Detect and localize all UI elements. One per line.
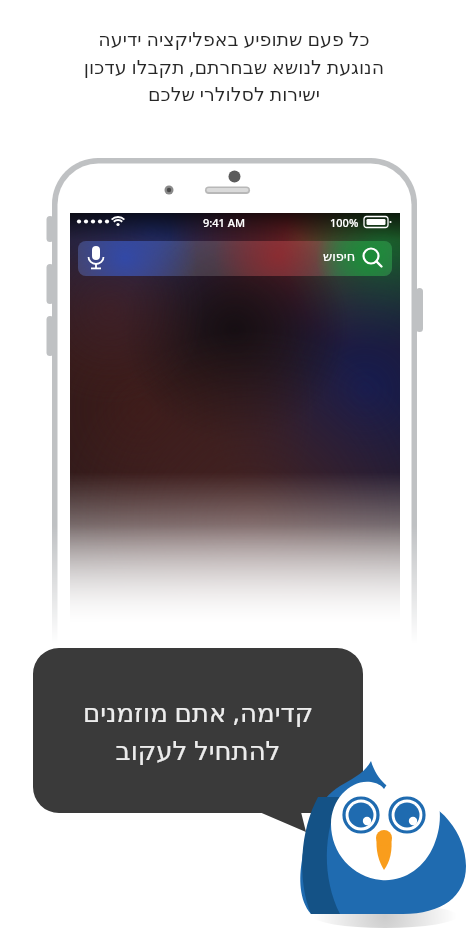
staticText: קדימה, אתם מוזמנים להתחיל לעקוב	[33, 694, 363, 767]
button[interactable]: Search	[70, 241, 392, 276]
other: Owl mascot	[0, 0, 468, 934]
staticText: חיפוש	[323, 249, 356, 264]
staticText: 100%	[330, 215, 359, 230]
staticText: כל פעם שתופיע באפליקציה ידיעה הנוגעת לנו…	[12, 26, 456, 106]
button[interactable]	[33, 648, 363, 813]
staticText: 9:41 AM	[203, 215, 246, 230]
